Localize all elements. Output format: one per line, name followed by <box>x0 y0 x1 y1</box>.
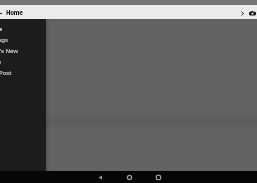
staticText: Settings <box>0 36 8 44</box>
button[interactable]: Settings <box>0 34 46 45</box>
button[interactable]: Recent apps <box>151 171 165 183</box>
staticText: Home <box>0 25 3 33</box>
button[interactable]: Share <box>0 56 46 67</box>
staticText: Share <box>0 58 2 66</box>
staticText: What's New <box>0 47 19 55</box>
button[interactable]: New Post <box>0 67 46 78</box>
button[interactable]: Camera <box>246 6 257 19</box>
staticText: Home <box>6 9 23 17</box>
button[interactable]: Home <box>0 23 46 34</box>
button[interactable]: Forward <box>236 6 249 19</box>
staticText: New Post <box>0 69 12 77</box>
button[interactable]: Home <box>122 171 136 183</box>
button[interactable]: Navigate up <box>0 6 5 19</box>
button[interactable]: Back <box>93 171 107 183</box>
button[interactable]: What's New <box>0 45 46 56</box>
